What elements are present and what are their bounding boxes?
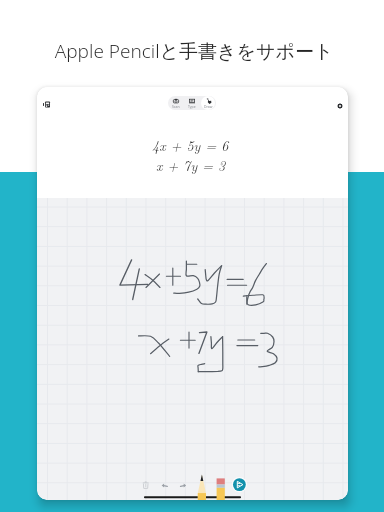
staticText: Type [188, 104, 196, 109]
button[interactable]: Clear all [145, 478, 159, 492]
button[interactable]: Draw [200, 96, 216, 110]
button[interactable]: Pen [202, 478, 216, 492]
button[interactable]: Keyboard [38, 96, 54, 112]
button[interactable]: Solve [240, 478, 254, 492]
button[interactable]: Type [184, 96, 200, 110]
staticText: Draw [204, 104, 213, 109]
staticText: 4x + 5y = 6 [152, 135, 229, 155]
button[interactable]: Scan [168, 96, 184, 110]
button[interactable]: Eraser [221, 478, 235, 492]
button[interactable]: Undo [164, 478, 178, 492]
staticText: Scan [172, 104, 180, 109]
staticText: Apple Pencilと手書きをサポート [2, 38, 384, 64]
button[interactable]: Redo [183, 478, 197, 492]
staticText: x + 7y = 3 [156, 155, 226, 175]
button[interactable]: Settings [332, 98, 348, 114]
